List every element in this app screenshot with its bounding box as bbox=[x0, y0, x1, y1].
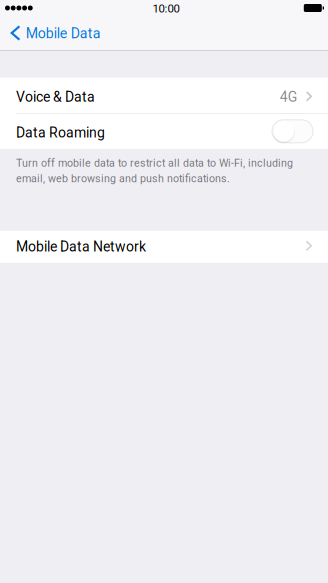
staticText: Turn off mobile data to restrict all dat… bbox=[16, 157, 293, 185]
staticText: Mobile Data Network bbox=[16, 239, 146, 255]
staticText: Mobile Data bbox=[26, 25, 101, 42]
button[interactable]: Mobile Data Network bbox=[0, 231, 328, 263]
staticText: 10:00 bbox=[152, 2, 179, 15]
button[interactable]: Voice & Data bbox=[0, 78, 328, 113]
button[interactable]: Data Roaming bbox=[272, 120, 313, 143]
staticText: 4G bbox=[280, 89, 298, 105]
staticText: Voice & Data bbox=[16, 89, 95, 105]
staticText: Data Roaming bbox=[16, 125, 105, 141]
button[interactable]: Mobile Data bbox=[0, 16, 111, 50]
